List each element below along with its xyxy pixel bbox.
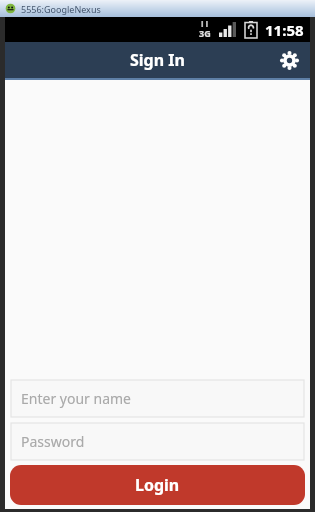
- staticText: Enter your name: [21, 389, 131, 408]
- staticText: Password: [21, 432, 85, 451]
- staticText: Login: [135, 474, 180, 496]
- staticText: 3G: [199, 27, 211, 39]
- button[interactable]: Enter your name: [11, 380, 304, 417]
- button[interactable]: Settings: [268, 42, 310, 78]
- staticText: Sign In: [130, 49, 185, 71]
- staticText: 5556:GoogleNexus: [21, 3, 101, 15]
- staticText: 11:58: [265, 20, 304, 40]
- button[interactable]: Password: [11, 423, 304, 460]
- button[interactable]: Login: [10, 465, 305, 505]
